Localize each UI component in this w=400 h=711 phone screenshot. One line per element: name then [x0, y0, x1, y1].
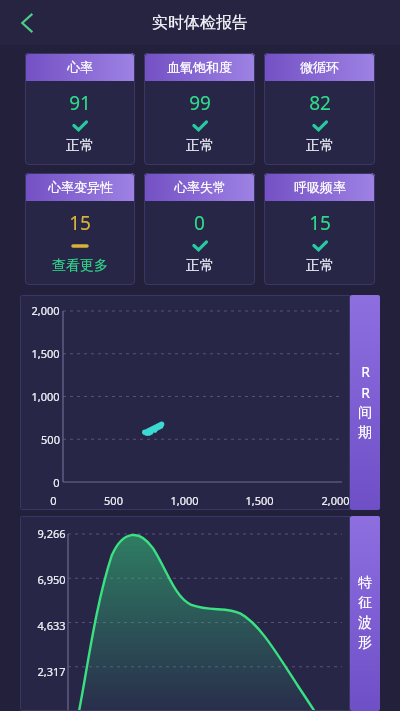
staticText: 呼吸频率 [294, 179, 346, 195]
button[interactable]: 心率变异性 [25, 173, 135, 285]
button[interactable]: 特 [350, 516, 380, 711]
staticText: 间 [358, 404, 372, 422]
staticText: 9,266 [37, 526, 66, 541]
staticText: 1,500 [31, 346, 60, 361]
staticText: R [361, 362, 370, 381]
staticText: 正常 [186, 257, 214, 275]
button[interactable]: 返回 [6, 1, 50, 45]
button[interactable]: 血氧饱和度 [144, 53, 255, 165]
staticText: 特 [358, 574, 372, 592]
button[interactable]: 心率失常 [144, 173, 255, 285]
staticText: 2,000 [321, 493, 350, 508]
staticText: 1,000 [170, 493, 199, 508]
staticText: 血氧饱和度 [167, 59, 232, 75]
button[interactable]: 微循环 [264, 53, 375, 165]
staticText: 形 [358, 634, 372, 652]
staticText: 0 [50, 493, 57, 508]
staticText: 正常 [306, 257, 334, 275]
staticText: 91 [69, 90, 91, 116]
staticText: 波 [358, 614, 372, 632]
staticText: 4,633 [37, 618, 66, 633]
button[interactable]: 心率 [25, 53, 135, 165]
staticText: 500 [41, 432, 60, 447]
staticText: 正常 [186, 137, 214, 155]
button[interactable]: 呼吸频率 [264, 173, 375, 285]
staticText: 82 [309, 90, 331, 116]
staticText: 500 [104, 493, 123, 508]
staticText: 心率 [67, 59, 93, 75]
staticText: 15 [69, 210, 91, 236]
staticText: 征 [358, 594, 372, 612]
staticText: 0 [194, 210, 205, 236]
staticText: 1,500 [245, 493, 274, 508]
staticText: 2,000 [31, 303, 60, 318]
staticText: 实时体检报告 [152, 13, 248, 33]
staticText: 1,000 [31, 389, 60, 404]
staticText: 99 [189, 90, 211, 116]
staticText: 查看更多 [52, 257, 108, 275]
staticText: 15 [309, 210, 331, 236]
staticText: 正常 [306, 137, 334, 155]
staticText: 0 [53, 475, 60, 490]
staticText: 期 [358, 424, 372, 442]
staticText: 心率变异性 [48, 179, 113, 195]
button[interactable]: R [350, 295, 380, 510]
staticText: R [361, 383, 370, 402]
staticText: 心率失常 [174, 179, 226, 195]
staticText: 2,317 [37, 664, 66, 679]
staticText: 正常 [66, 137, 94, 155]
staticText: 微循环 [300, 59, 339, 75]
staticText: 6,950 [37, 572, 66, 587]
